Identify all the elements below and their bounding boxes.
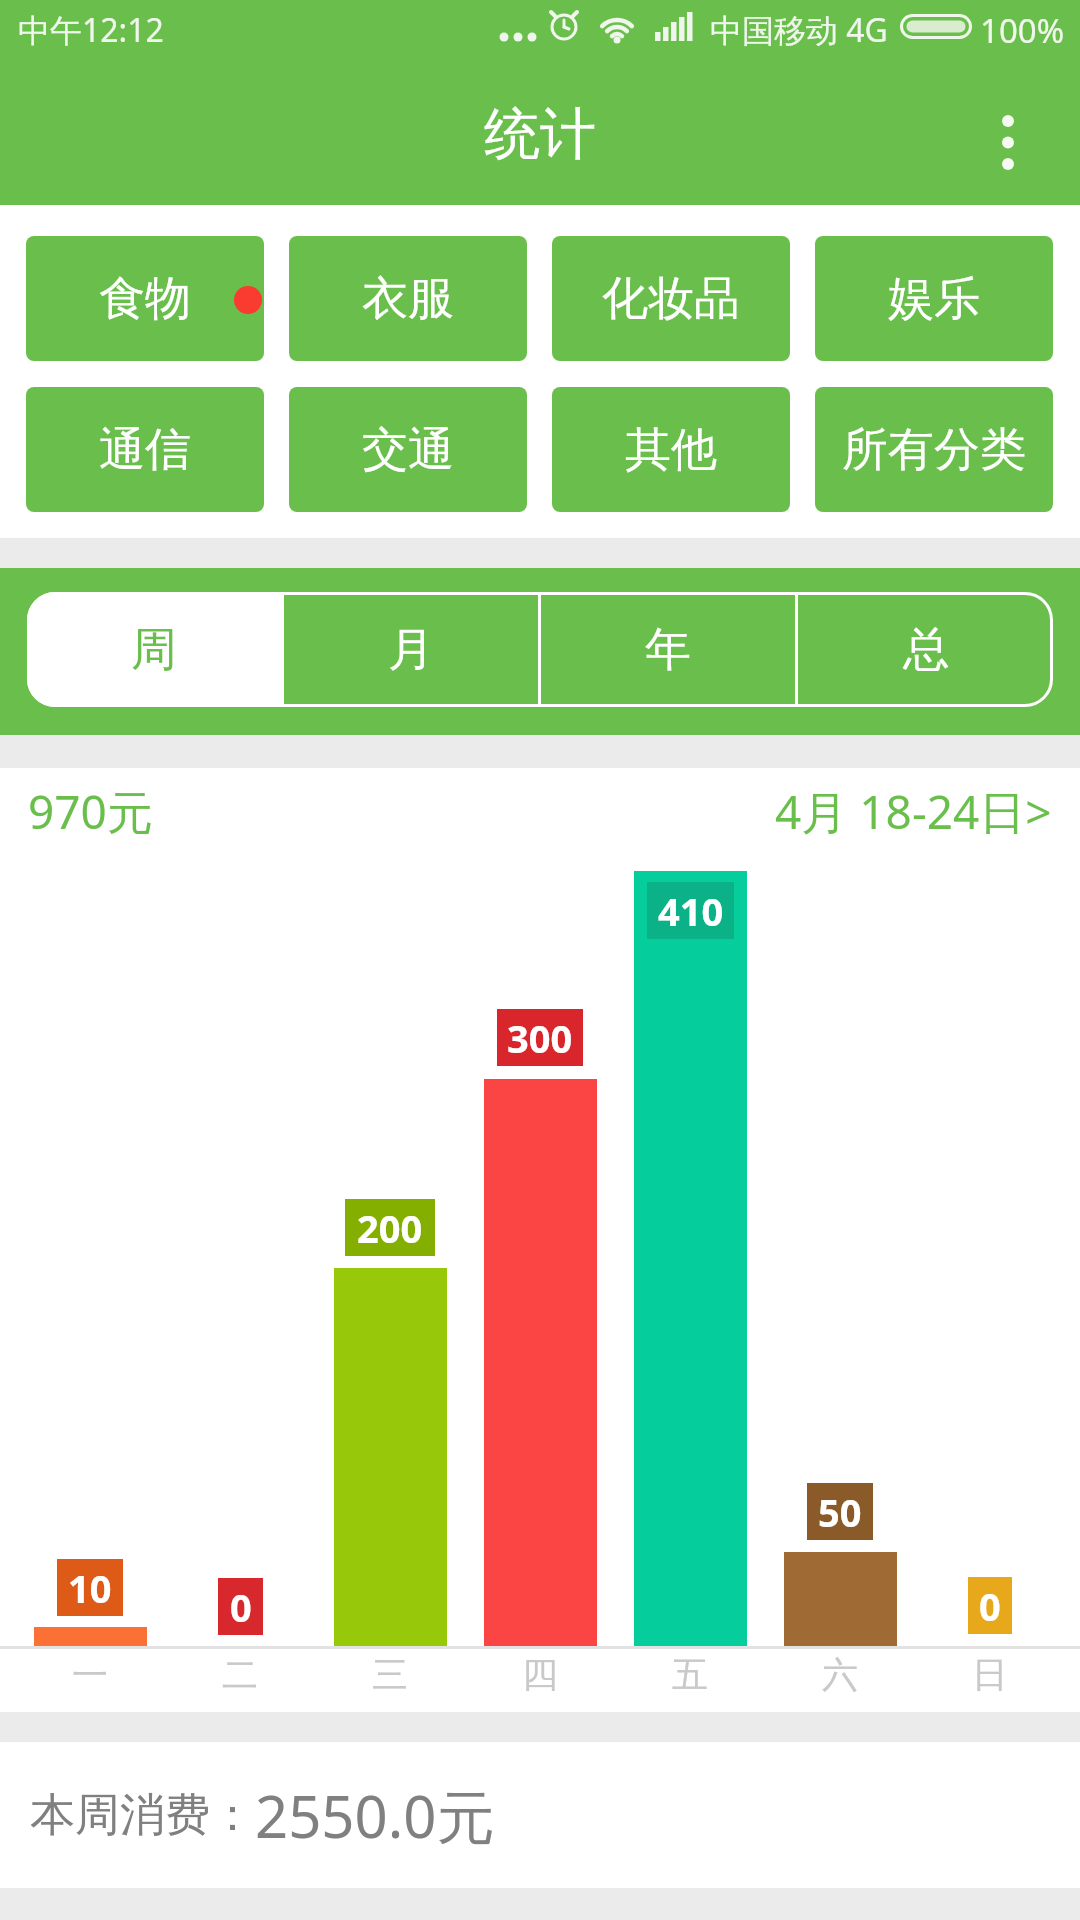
staticText: 0 — [230, 1581, 252, 1633]
staticText: 通信 — [99, 421, 191, 479]
button[interactable]: 4月 18-24日> — [600, 780, 1052, 836]
staticText: 300 — [507, 1012, 573, 1064]
button[interactable]: 其他 — [552, 387, 790, 512]
staticText: 中午12:12 — [18, 8, 164, 52]
staticText: 二 — [222, 1652, 258, 1692]
staticText: 日 — [972, 1652, 1008, 1692]
staticText: 六 — [822, 1652, 858, 1692]
staticText: 衣服 — [362, 270, 454, 328]
staticText: 所有分类 — [842, 421, 1026, 479]
staticText: 娱乐 — [888, 270, 980, 328]
button[interactable]: 周 — [27, 592, 281, 707]
staticText: 月 — [388, 621, 434, 679]
staticText: 四 — [522, 1652, 558, 1692]
staticText: 五 — [672, 1652, 708, 1692]
staticText: 200 — [357, 1202, 423, 1254]
staticText: 统计 — [484, 99, 596, 170]
staticText: 总 — [903, 621, 949, 679]
button[interactable]: 本周消费： — [0, 1742, 1080, 1888]
staticText: 化妆品 — [602, 270, 740, 328]
staticText: 410 — [658, 885, 724, 937]
staticText: 本周消费： — [30, 1787, 255, 1844]
staticText: 10 — [68, 1562, 112, 1614]
button[interactable]: 化妆品 — [552, 236, 790, 361]
button[interactable]: 月 — [284, 592, 538, 707]
staticText: 其他 — [625, 421, 717, 479]
button[interactable] — [984, 103, 1032, 183]
button[interactable]: 食物 — [26, 236, 264, 361]
staticText: 100% — [980, 8, 1065, 52]
staticText: 一 — [72, 1652, 108, 1692]
button[interactable]: 通信 — [26, 387, 264, 512]
button[interactable]: 衣服 — [289, 236, 527, 361]
button[interactable]: 娱乐 — [815, 236, 1053, 361]
staticText: 中国移动 4G — [710, 8, 888, 52]
staticText: 50 — [818, 1486, 862, 1538]
staticText: 4月 18-24日> — [775, 780, 1052, 836]
staticText: 交通 — [362, 421, 454, 479]
button[interactable]: 总 — [798, 592, 1053, 707]
button[interactable]: 交通 — [289, 387, 527, 512]
staticText: 2550.0元 — [255, 1776, 495, 1855]
staticText: 0 — [979, 1580, 1001, 1632]
staticText: 970元 — [28, 780, 153, 836]
staticText: 三 — [372, 1652, 408, 1692]
staticText: 食物 — [99, 270, 191, 328]
button[interactable]: 年 — [541, 592, 795, 707]
button[interactable]: 所有分类 — [815, 387, 1053, 512]
staticText: 年 — [645, 621, 691, 679]
staticText: 周 — [131, 621, 177, 679]
